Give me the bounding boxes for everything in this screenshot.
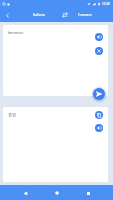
button[interactable]: Clear [93, 45, 104, 56]
button[interactable]: Recent apps [82, 187, 94, 199]
staticText: benvenuto [8, 31, 24, 35]
button[interactable]: Translate [93, 88, 105, 100]
button[interactable]: Copy [93, 109, 104, 120]
staticText: 환영 [8, 112, 16, 117]
button[interactable]: Back [0, 8, 14, 22]
button[interactable]: Swap languages [59, 9, 71, 21]
staticText: Coreano [78, 12, 92, 17]
button[interactable]: Back [19, 187, 31, 199]
button[interactable]: Coreano [73, 8, 97, 21]
staticText: 12:30 [102, 2, 111, 6]
button[interactable]: Listen [93, 31, 104, 42]
button[interactable]: Listen [93, 122, 104, 133]
button[interactable]: Italiano [27, 8, 51, 21]
staticText: Italiano [33, 12, 46, 17]
button[interactable]: Home [51, 187, 63, 199]
